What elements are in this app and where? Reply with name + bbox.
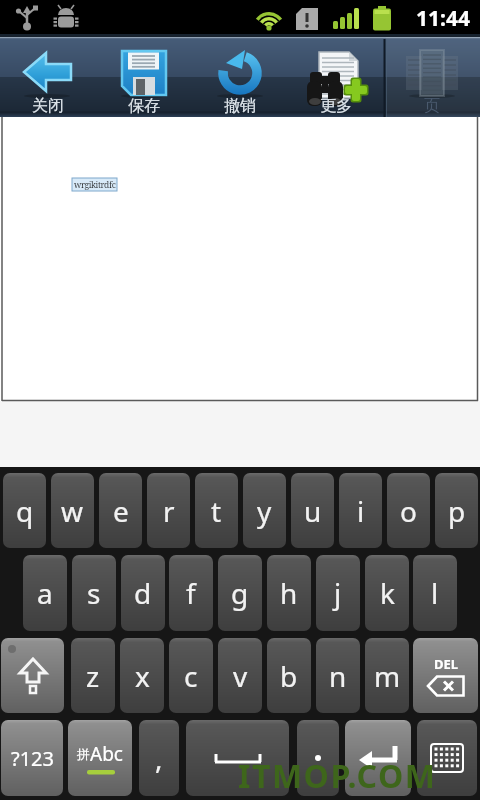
staticText: y: [257, 492, 272, 530]
staticText: f: [186, 574, 196, 612]
button[interactable]: x: [120, 638, 164, 713]
staticText: b: [280, 657, 298, 695]
staticText: Abc: [90, 741, 123, 767]
staticText: w: [61, 492, 84, 530]
staticText: q: [16, 492, 34, 530]
staticText: u: [304, 492, 322, 530]
staticText: t: [211, 492, 222, 530]
button[interactable]: 更多: [288, 37, 384, 117]
staticText: 关闭: [32, 96, 64, 116]
button[interactable]: j: [316, 555, 360, 631]
staticText: e: [113, 492, 129, 530]
staticText: h: [280, 574, 298, 612]
staticText: DEL: [434, 655, 459, 673]
staticText: wrgikitrdfc: [74, 179, 116, 191]
button[interactable]: m: [365, 638, 409, 713]
button[interactable]: [186, 720, 289, 796]
button[interactable]: i: [339, 473, 382, 548]
staticText: r: [163, 492, 175, 530]
button[interactable]: c: [169, 638, 213, 713]
button[interactable]: z: [71, 638, 115, 713]
staticText: k: [380, 574, 395, 612]
button[interactable]: k: [365, 555, 409, 631]
staticText: ,: [155, 739, 163, 777]
button[interactable]: ,: [139, 720, 179, 796]
staticText: j: [334, 574, 342, 612]
button[interactable]: w: [51, 473, 94, 548]
button[interactable]: h: [267, 555, 311, 631]
staticText: 保存: [128, 96, 160, 116]
staticText: 拼: [77, 746, 90, 762]
staticText: s: [87, 574, 101, 612]
button[interactable]: wrgikitrdfc: [72, 178, 117, 191]
button[interactable]: a: [23, 555, 67, 631]
button[interactable]: p: [435, 473, 478, 548]
button[interactable]: 页: [384, 37, 480, 117]
button[interactable]: d: [121, 555, 165, 631]
staticText: z: [86, 657, 100, 695]
staticText: l: [431, 574, 439, 612]
staticText: 更多: [320, 96, 352, 116]
staticText: a: [37, 574, 53, 612]
button[interactable]: u: [291, 473, 334, 548]
button[interactable]: [1, 638, 64, 713]
staticText: d: [134, 574, 152, 612]
button[interactable]: l: [413, 555, 457, 631]
button[interactable]: n: [316, 638, 360, 713]
button[interactable]: 关闭: [0, 37, 96, 117]
staticText: p: [448, 492, 466, 530]
button[interactable]: 撤销: [192, 37, 288, 117]
button[interactable]: r: [147, 473, 190, 548]
staticText: 页: [424, 96, 440, 116]
button[interactable]: [417, 720, 477, 796]
button[interactable]: 拼: [68, 720, 132, 796]
button[interactable]: DEL: [413, 638, 478, 713]
staticText: v: [233, 657, 248, 695]
button[interactable]: e: [99, 473, 142, 548]
staticText: i: [357, 492, 365, 530]
button[interactable]: g: [218, 555, 262, 631]
staticText: ITMOP.COM: [238, 754, 437, 798]
staticText: n: [329, 657, 347, 695]
button[interactable]: f: [169, 555, 213, 631]
button[interactable]: o: [387, 473, 430, 548]
button[interactable]: y: [243, 473, 286, 548]
staticText: ?123: [11, 745, 54, 772]
button[interactable]: 保存: [96, 37, 192, 117]
staticText: 11:44: [416, 4, 470, 33]
staticText: 撤销: [224, 96, 256, 116]
button[interactable]: s: [72, 555, 116, 631]
button[interactable]: [345, 720, 411, 796]
button[interactable]: q: [3, 473, 46, 548]
staticText: o: [400, 492, 417, 530]
button[interactable]: ?123: [1, 720, 63, 796]
button[interactable]: t: [195, 473, 238, 548]
staticText: x: [135, 657, 150, 695]
staticText: m: [374, 657, 401, 695]
button[interactable]: b: [267, 638, 311, 713]
button[interactable]: v: [218, 638, 262, 713]
staticText: g: [231, 574, 249, 612]
button[interactable]: [297, 720, 339, 796]
staticText: c: [184, 657, 198, 695]
